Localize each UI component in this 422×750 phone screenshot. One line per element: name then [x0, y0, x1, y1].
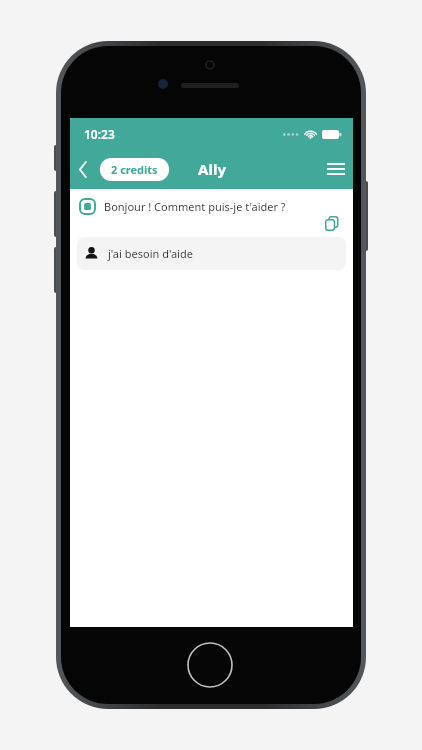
button[interactable]: j'ai besoin d'aide — [77, 237, 346, 270]
button[interactable]: Menu — [319, 149, 353, 189]
staticText: Bonjour ! Comment puis-je t'aider ? — [104, 199, 286, 214]
button[interactable]: Copy — [319, 210, 345, 236]
staticText: 2 credits — [111, 162, 158, 177]
staticText: Ally — [198, 159, 226, 179]
staticText: j'ai besoin d'aide — [108, 246, 193, 261]
staticText: 10:23 — [84, 126, 115, 142]
button[interactable]: Back — [70, 149, 96, 189]
button[interactable]: 2 credits — [100, 158, 169, 181]
